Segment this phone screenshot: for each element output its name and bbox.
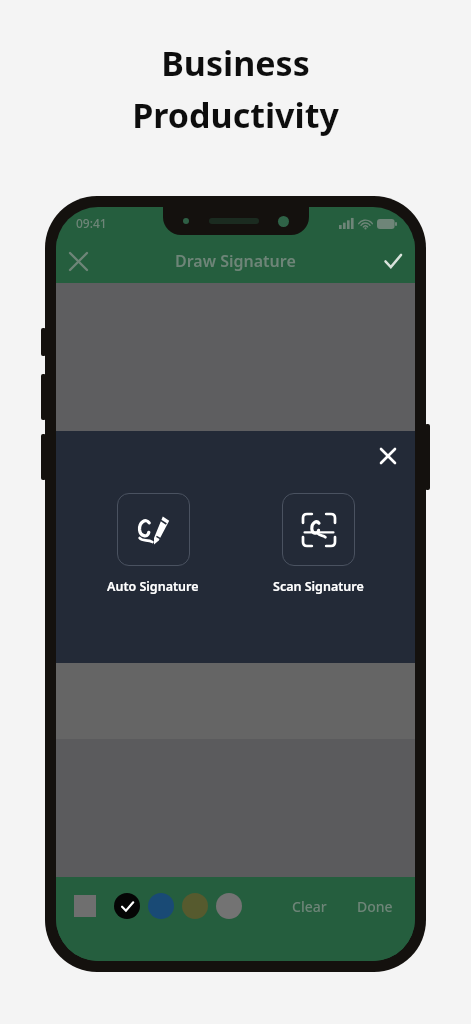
button[interactable]: Gray <box>216 893 242 919</box>
button[interactable]: Confirm <box>371 239 415 283</box>
staticText: Productivity <box>132 92 339 138</box>
staticText: Clear <box>292 897 327 916</box>
button[interactable]: Black <box>114 893 140 919</box>
staticText: 09:41 <box>76 215 107 231</box>
button[interactable]: Close <box>56 239 100 283</box>
button[interactable]: Olive <box>182 893 208 919</box>
staticText: Auto Signature <box>107 578 199 595</box>
staticText: Business <box>161 40 310 86</box>
staticText: Done <box>357 897 393 916</box>
staticText: Scan Signature <box>273 578 364 595</box>
button[interactable]: Dismiss panel <box>371 439 405 473</box>
button[interactable]: Auto Signature <box>107 493 199 595</box>
button[interactable]: Blue <box>148 893 174 919</box>
button[interactable]: Clear <box>290 895 329 918</box>
button[interactable]: Done <box>355 895 395 918</box>
button[interactable]: Scan Signature <box>273 493 364 595</box>
staticText: Draw Signature <box>175 250 296 272</box>
